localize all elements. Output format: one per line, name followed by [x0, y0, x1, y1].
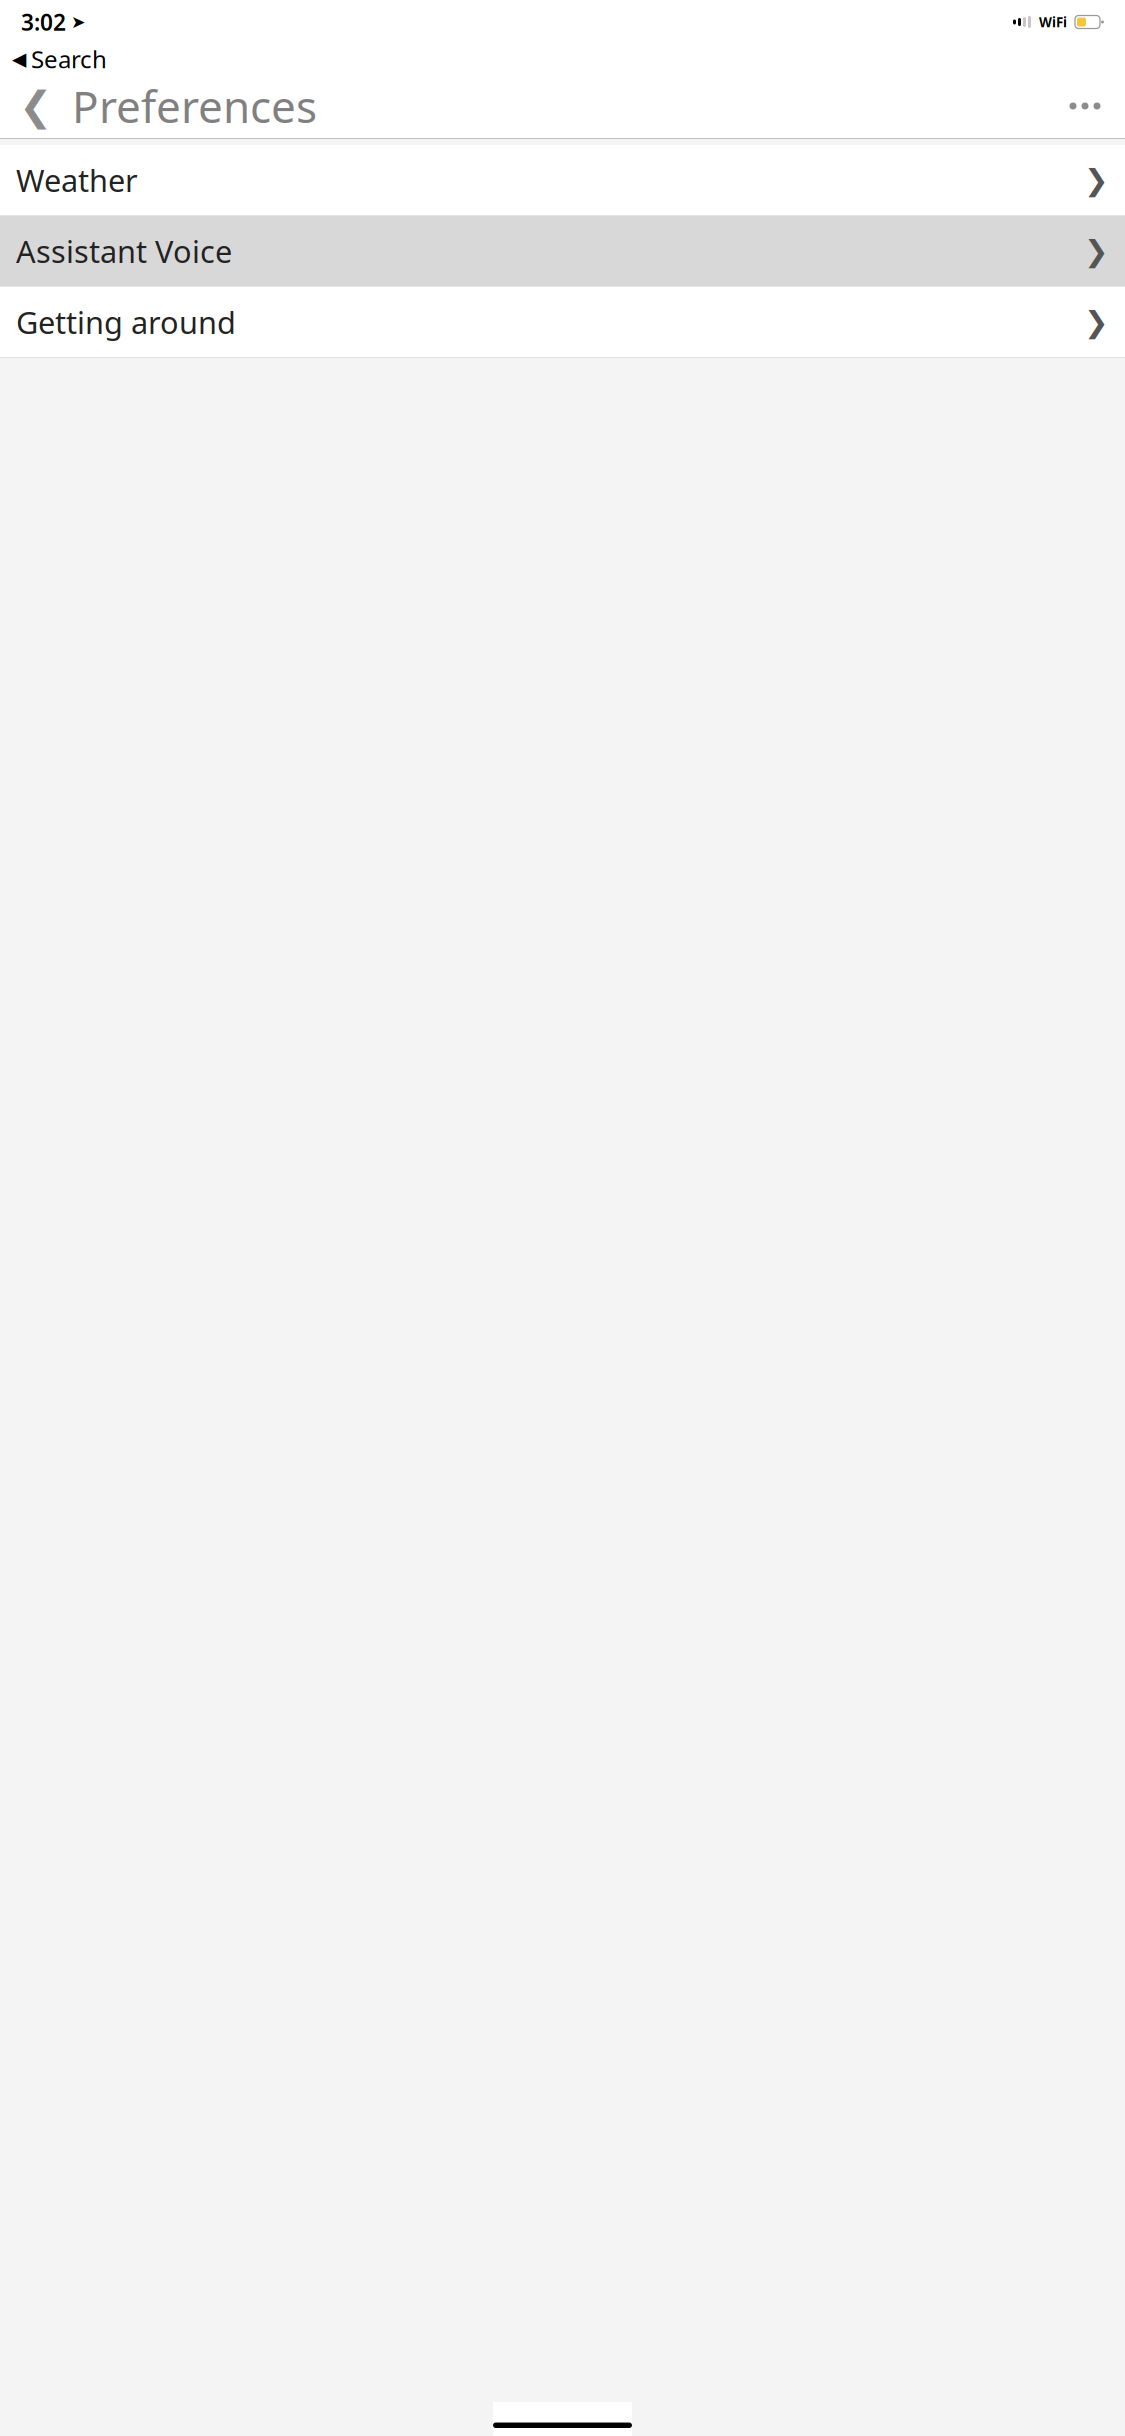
button[interactable]: Assistant Voice [0, 216, 1125, 286]
button[interactable]: Back [10, 78, 62, 134]
staticText: ❮ [19, 83, 53, 129]
staticText: ◀ [12, 48, 26, 70]
button[interactable]: Weather [0, 145, 1125, 215]
staticText: 3:02 [21, 7, 66, 37]
button[interactable]: ◀ [0, 41, 119, 77]
staticText: Weather [16, 160, 138, 200]
button[interactable]: More options [1055, 78, 1115, 134]
staticText: ➤ [71, 12, 86, 32]
staticText: Getting around [16, 302, 236, 342]
staticText: Search [31, 43, 107, 75]
staticText: Assistant Voice [16, 231, 232, 271]
staticText: ❯ [1084, 234, 1109, 268]
staticText: WiFi [1039, 13, 1067, 31]
staticText: ❯ [1084, 163, 1109, 197]
staticText: Preferences [72, 77, 317, 135]
button[interactable]: Getting around [0, 287, 1125, 357]
staticText: ❯ [1084, 305, 1109, 339]
